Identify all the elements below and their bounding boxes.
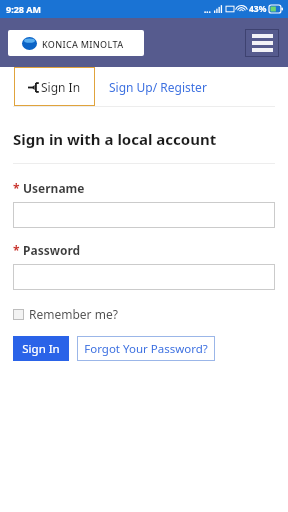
button[interactable]: Remember me? — [13, 306, 118, 322]
button[interactable]: Sign Up/ Register — [95, 67, 221, 106]
button[interactable]: Sign In — [13, 336, 69, 361]
staticText: Remember me? — [29, 306, 118, 322]
staticText: * — [13, 180, 20, 196]
staticText: ... — [204, 4, 211, 15]
staticText: Username — [23, 180, 85, 196]
button[interactable]: Konica Minolta home — [8, 30, 144, 56]
staticText: Forgot Your Password? — [84, 341, 208, 357]
staticText: Sign Up/ Register — [109, 79, 207, 95]
staticText: 9:28 AM — [6, 3, 42, 15]
button[interactable]: Sign In — [14, 67, 95, 106]
staticText: * — [13, 242, 20, 258]
staticText: Sign In — [22, 341, 60, 357]
staticText: 43% — [249, 3, 267, 15]
staticText: Password — [23, 242, 81, 258]
button[interactable]: Menu — [245, 29, 279, 57]
button[interactable] — [13, 264, 275, 290]
staticText: Sign In — [41, 79, 81, 95]
button[interactable]: Forgot Your Password? — [77, 336, 215, 361]
staticText: Sign in with a local account — [13, 129, 217, 149]
staticText: KONICA MINOLTA — [42, 38, 124, 50]
button[interactable] — [13, 202, 275, 228]
